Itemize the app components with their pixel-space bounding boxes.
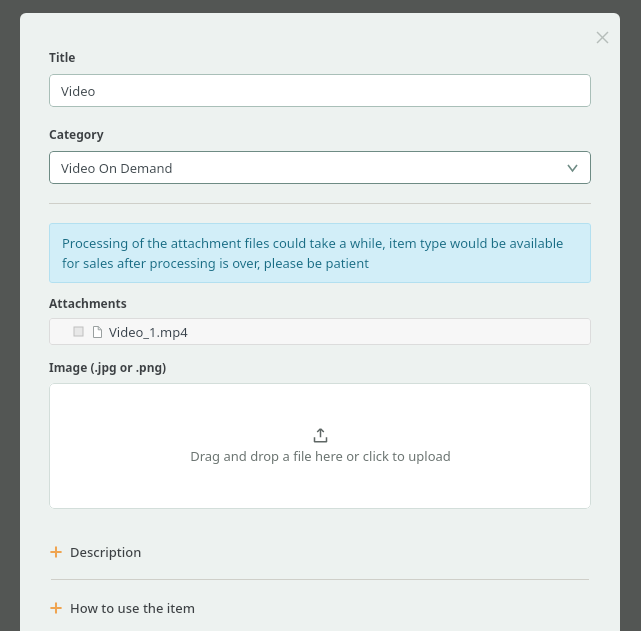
button[interactable]: Drag and drop a file here or click to up…	[49, 383, 591, 509]
button[interactable]: Description	[49, 524, 591, 579]
button[interactable]: How to use the item	[49, 580, 591, 631]
staticText: Video On Demand	[61, 159, 173, 177]
staticText: Attachments	[49, 295, 127, 311]
other: Expand category	[565, 161, 579, 175]
staticText: Category	[49, 126, 104, 142]
button[interactable]: Close	[580, 15, 620, 59]
staticText: How to use the item	[70, 599, 196, 617]
button[interactable]: Video On Demand	[49, 151, 591, 184]
button[interactable]: Video	[49, 74, 591, 107]
staticText: Title	[49, 49, 76, 65]
staticText: Image (.jpg or .png)	[49, 359, 167, 375]
staticText: Video	[61, 82, 96, 100]
staticText: Drag and drop a file here or click to up…	[190, 447, 451, 465]
staticText: Processing of the attachment files could…	[62, 234, 578, 272]
staticText: Video_1.mp4	[109, 323, 188, 341]
button[interactable]: Video_1.mp4	[49, 318, 591, 345]
staticText: Description	[70, 543, 142, 561]
